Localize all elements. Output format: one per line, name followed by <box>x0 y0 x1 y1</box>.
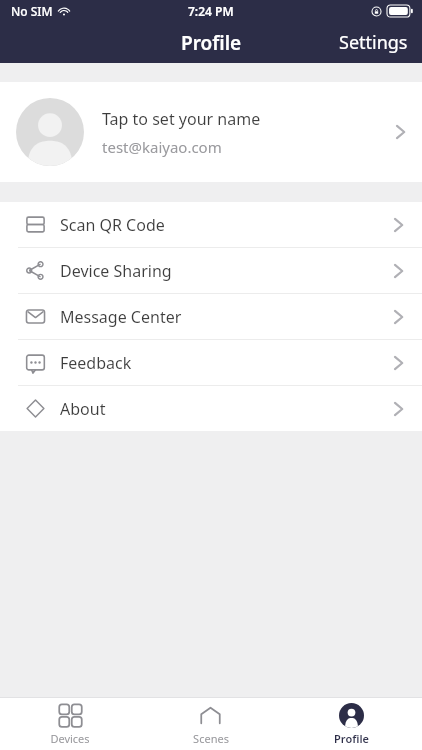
staticText: Devices <box>50 731 90 746</box>
staticText: Feedback <box>60 352 393 374</box>
button[interactable]: Tap to set your name <box>0 82 422 182</box>
staticText: Scan QR Code <box>60 214 393 236</box>
staticText: Profile <box>181 30 242 56</box>
button[interactable]: Settings <box>325 22 422 63</box>
staticText: Settings <box>339 30 408 55</box>
staticText: 7:24 PM <box>188 3 234 19</box>
button[interactable]: Feedback <box>0 340 422 385</box>
staticText: No SIM <box>11 3 53 19</box>
button[interactable]: Device Sharing <box>0 248 422 293</box>
button[interactable]: Message Center <box>0 294 422 339</box>
staticText: Tap to set your name <box>102 108 261 130</box>
staticText: Scenes <box>193 731 229 746</box>
button[interactable]: Scenes <box>140 698 281 750</box>
staticText: About <box>60 398 393 420</box>
staticText: Device Sharing <box>60 260 393 282</box>
button[interactable]: About <box>0 386 422 431</box>
staticText: Profile <box>334 731 369 746</box>
staticText: test@kaiyao.com <box>102 137 222 157</box>
button[interactable]: Devices <box>0 698 140 750</box>
button[interactable]: Scan QR Code <box>0 202 422 247</box>
button[interactable]: Profile <box>281 698 422 750</box>
staticText: Message Center <box>60 306 393 328</box>
